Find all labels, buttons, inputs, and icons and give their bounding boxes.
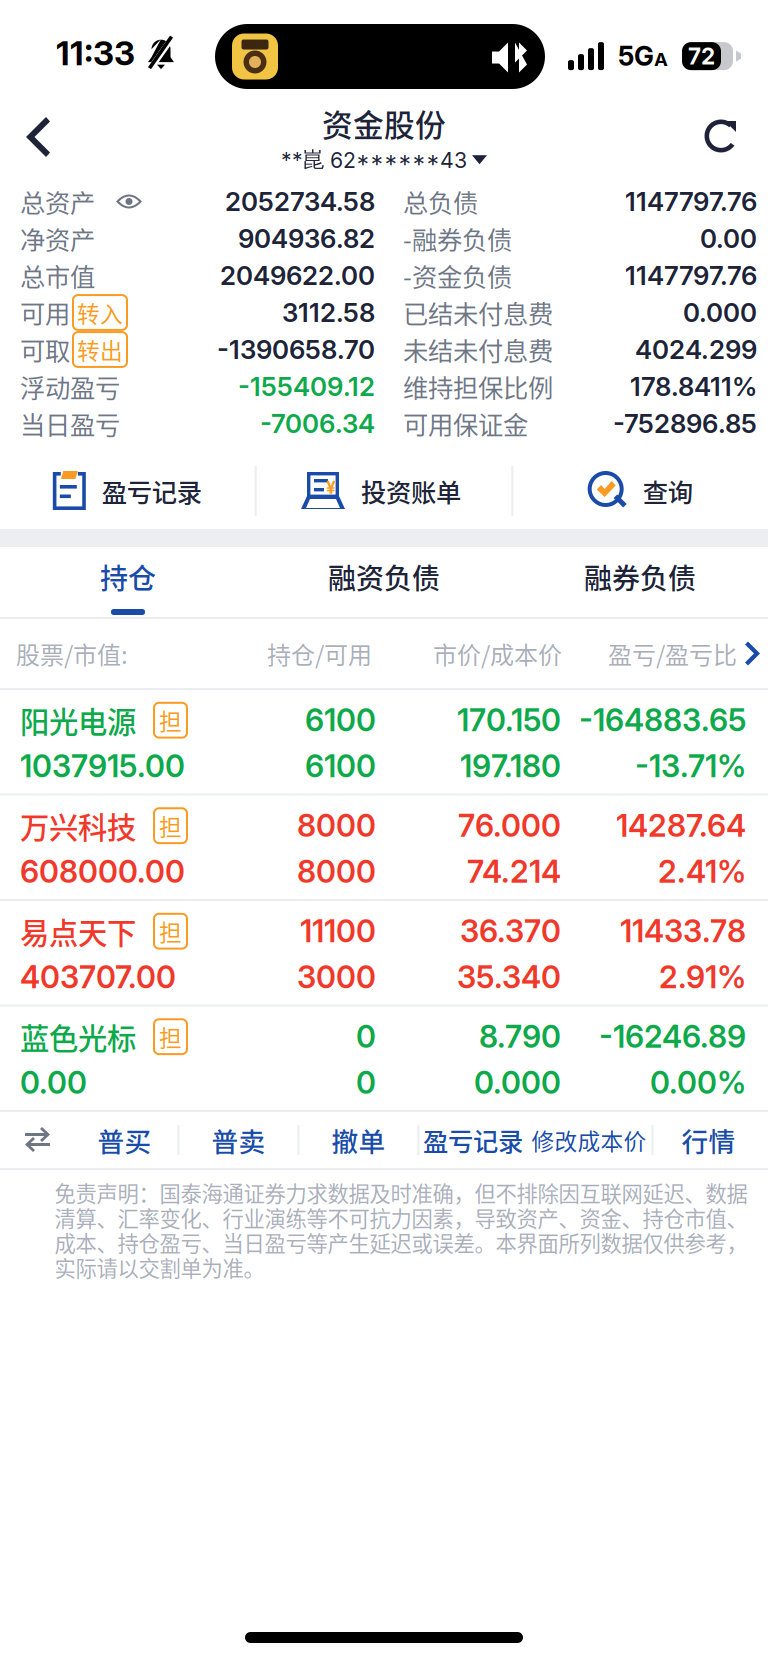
staticText: 11:33 [56, 33, 135, 73]
staticText: 可用 [20, 294, 70, 331]
staticText: -155409.12 [238, 371, 375, 402]
staticText: A [654, 48, 668, 70]
staticText: 持仓 [100, 556, 156, 597]
staticText: 转入 [77, 296, 123, 329]
staticText: -资金负债 [403, 257, 512, 294]
button[interactable]: 切换 [4, 1127, 71, 1153]
staticText: 2.41% [658, 853, 746, 890]
staticText: 1037915.00 [20, 747, 185, 784]
staticText: 2.91% [659, 958, 746, 995]
staticText: 6100 [305, 702, 376, 739]
staticText: 1147797.76 [625, 260, 757, 291]
button[interactable]: 更多列 [737, 641, 760, 665]
button[interactable]: 万兴科技 [0, 795, 768, 899]
staticText: 4024.299 [635, 334, 757, 365]
button[interactable]: 易点天下 [0, 901, 768, 1004]
staticText: 可取 [20, 331, 70, 368]
staticText: 8000 [297, 807, 376, 844]
staticText: 资金股份 [322, 101, 446, 145]
staticText: 担 [159, 1020, 182, 1053]
staticText: 市价/成本价 [433, 636, 562, 671]
button[interactable]: 融券负债 [512, 547, 768, 617]
staticText: **崑 62******43 [281, 146, 467, 173]
staticText: 3000 [297, 958, 376, 995]
staticText: 普卖 [211, 1121, 265, 1159]
staticText: 撤单 [331, 1121, 385, 1159]
staticText: 盈亏/盈亏比 [608, 636, 737, 671]
staticText: 行情 [681, 1121, 735, 1159]
staticText: 403707.00 [20, 958, 176, 995]
staticText: 免责声明：国泰海通证券力求数据及时准确，但不排除因互联网延迟、数据 [54, 1177, 747, 1208]
staticText: 总资产 [20, 183, 95, 220]
button[interactable]: 融资负债 [256, 547, 512, 617]
staticText: 0.00% [650, 1064, 746, 1101]
staticText: 3112.58 [282, 297, 375, 328]
staticText: 36.370 [460, 913, 561, 950]
staticText: 担 [159, 915, 182, 948]
button[interactable]: 普卖 [179, 1112, 297, 1168]
staticText: 浮动盈亏 [20, 368, 120, 405]
staticText: 融券负债 [584, 556, 696, 597]
button[interactable]: 转出 [73, 332, 127, 367]
staticText: 0.000 [683, 297, 757, 328]
staticText: 查询 [643, 473, 693, 509]
button[interactable]: 转入 [73, 295, 127, 330]
staticText: ¥ [326, 477, 336, 498]
staticText: 已结未付息费 [403, 294, 553, 331]
staticText: 0 [356, 1064, 376, 1101]
staticText: 6100 [305, 747, 376, 784]
staticText: -752896.85 [613, 408, 757, 439]
staticText: 5G [618, 40, 654, 72]
button[interactable]: 盈亏记录 [419, 1112, 526, 1168]
button[interactable]: 撤单 [299, 1112, 417, 1168]
staticText: 修改成本价 [531, 1124, 646, 1156]
staticText: -16246.89 [599, 1018, 746, 1055]
button[interactable]: 显示或隐藏资产 [115, 191, 143, 211]
staticText: 11433.78 [620, 913, 746, 950]
staticText: 盈亏记录 [423, 1122, 523, 1158]
staticText: 盈亏记录 [102, 473, 202, 509]
staticText: 11100 [300, 913, 376, 950]
button[interactable]: 查询 [513, 453, 768, 529]
button[interactable]: ¥ [257, 453, 511, 529]
staticText: 转出 [77, 333, 123, 366]
staticText: 清算、汇率变化、行业演练等不可抗力因素，导致资产、资金、持仓市值、 [54, 1202, 747, 1233]
staticText: 蓝色光标 [20, 1015, 136, 1058]
staticText: 197.180 [460, 747, 561, 784]
staticText: 未结未付息费 [403, 331, 553, 368]
staticText: 维持担保比例 [403, 368, 553, 405]
staticText: 0.00 [700, 223, 757, 254]
button[interactable]: 阳光电源 [0, 690, 768, 793]
button[interactable]: 刷新 [682, 103, 764, 171]
staticText: 实际请以交割单为准。 [54, 1252, 264, 1283]
staticText: 易点天下 [20, 910, 136, 952]
button[interactable]: 盈亏记录 [0, 453, 255, 529]
staticText: 担 [159, 809, 182, 842]
staticText: -13.71% [635, 747, 746, 784]
staticText: 904936.82 [238, 223, 375, 254]
button[interactable]: 返回 [4, 103, 72, 171]
button[interactable]: 普买 [71, 1112, 177, 1168]
staticText: 成本、持仓盈亏、当日盈亏等产生延迟或误差。本界面所列数据仅供参考， [54, 1227, 747, 1258]
staticText: -融券负债 [403, 220, 512, 257]
staticText: 万兴科技 [20, 804, 136, 847]
button[interactable]: 持仓 [0, 547, 256, 617]
staticText: 净资产 [20, 220, 95, 257]
staticText: 阳光电源 [20, 699, 136, 741]
staticText: -7006.34 [260, 408, 375, 439]
button[interactable]: 修改成本价 [526, 1112, 651, 1168]
staticText: 担 [159, 704, 182, 737]
staticText: 14287.64 [616, 807, 746, 844]
staticText: 0.000 [474, 1064, 561, 1101]
staticText: 8.790 [479, 1018, 561, 1055]
staticText: 76.000 [458, 807, 561, 844]
button[interactable]: 行情 [653, 1112, 763, 1168]
staticText: 2049622.00 [220, 260, 375, 291]
button[interactable]: 蓝色光标 [0, 1006, 768, 1110]
staticText: 608000.00 [20, 853, 185, 890]
staticText: 8000 [297, 853, 376, 890]
staticText: 融资负债 [328, 556, 440, 597]
staticText: 0 [356, 1018, 376, 1055]
staticText: 178.8411% [630, 371, 757, 402]
staticText: -164883.65 [579, 702, 746, 739]
